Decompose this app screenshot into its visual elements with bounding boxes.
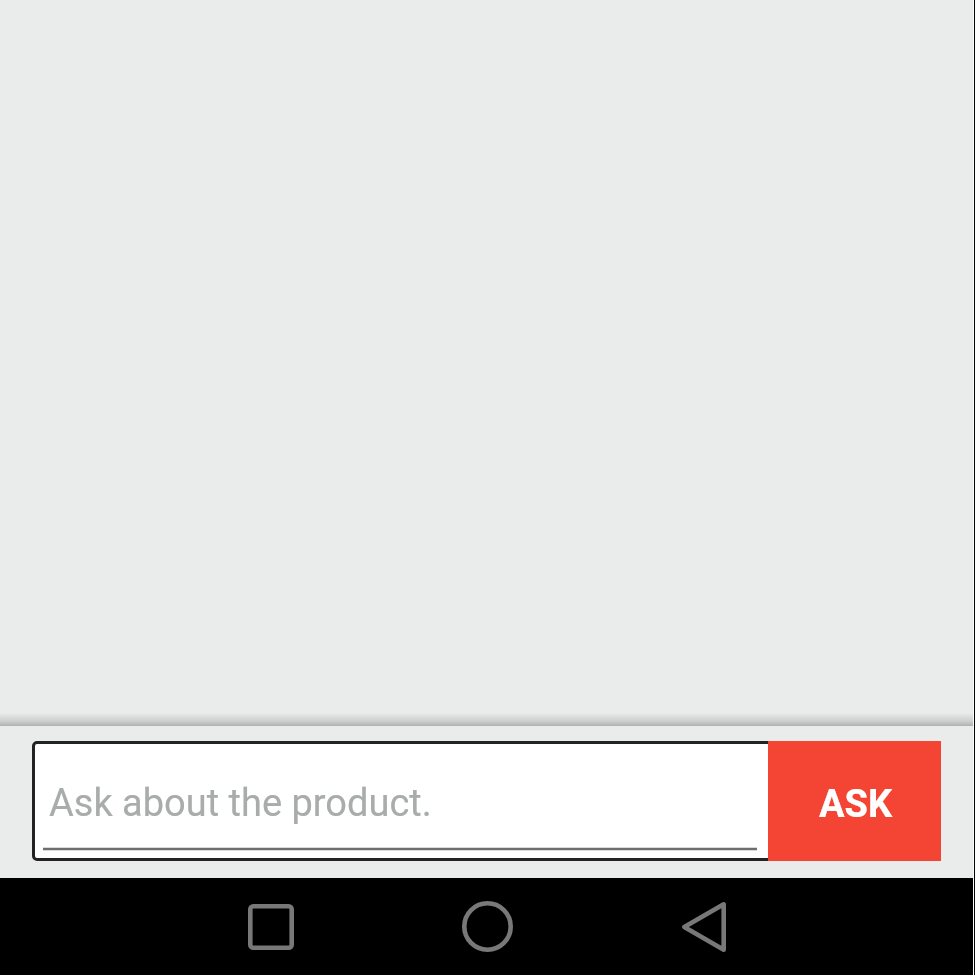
staticText: Ask about the product.: [49, 781, 432, 826]
button[interactable]: Ask about the product.: [32, 741, 768, 861]
staticText: ASK: [819, 782, 893, 827]
button[interactable]: Back: [595, 878, 811, 975]
button[interactable]: Home: [379, 878, 595, 975]
button[interactable]: ASK: [768, 741, 941, 861]
button[interactable]: Recent apps: [163, 878, 379, 975]
